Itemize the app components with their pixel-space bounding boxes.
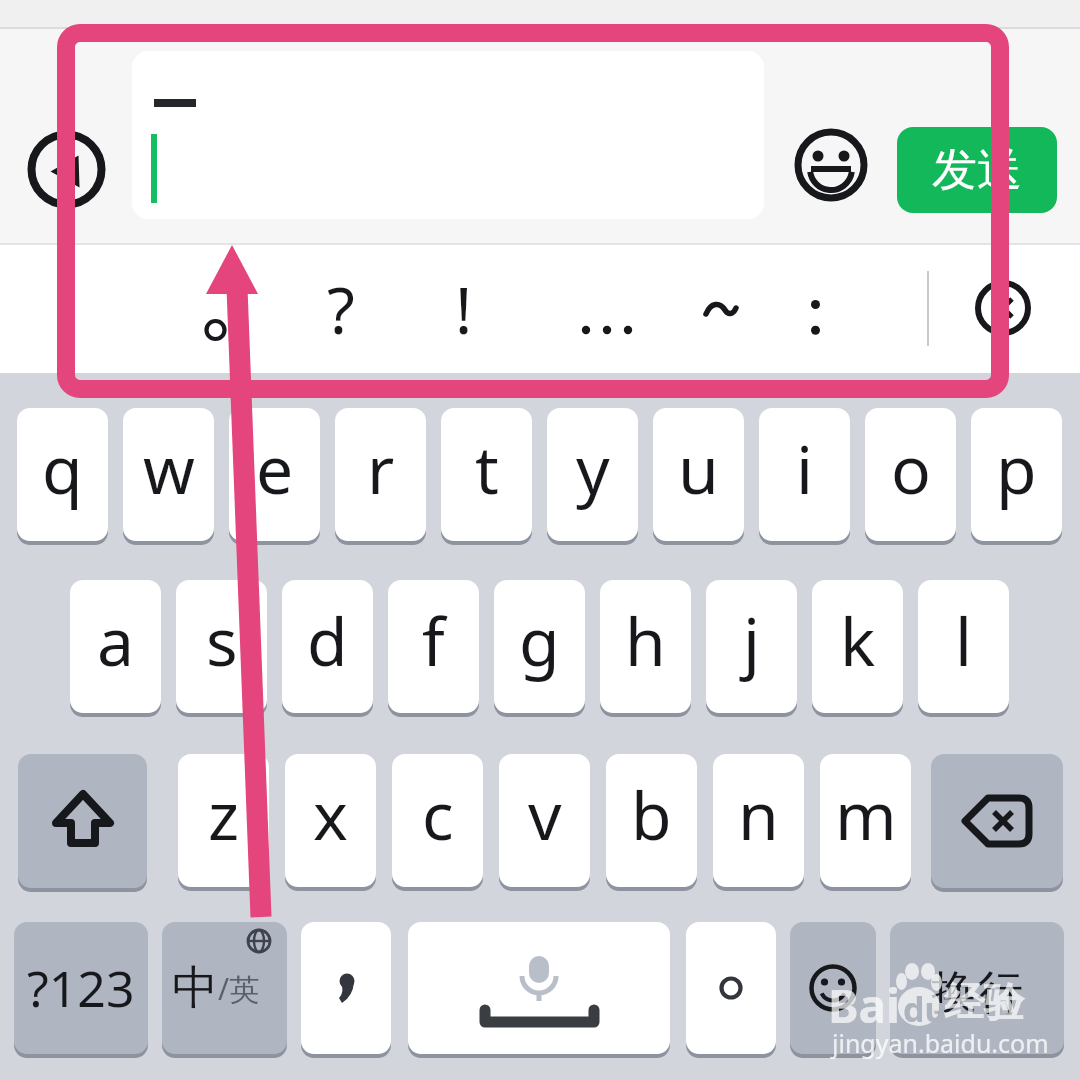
staticText: u [678, 423, 719, 513]
button[interactable]: p [971, 408, 1062, 541]
button[interactable]: 换行 [890, 922, 1064, 1054]
button[interactable]: ? [291, 245, 391, 373]
staticText: /英 [218, 968, 260, 1009]
button[interactable]: i [759, 408, 850, 541]
staticText: ? [327, 266, 355, 353]
staticText: e [256, 423, 294, 513]
staticText: 换行 [931, 964, 1023, 1022]
staticText: b [631, 769, 672, 859]
button[interactable]: z [178, 754, 269, 887]
button[interactable]: l [918, 580, 1009, 713]
button[interactable] [790, 922, 876, 1054]
button[interactable] [301, 922, 391, 1054]
button[interactable]: e [229, 408, 320, 541]
staticText: h [625, 595, 666, 685]
staticText: o [891, 423, 931, 513]
staticText: p [996, 423, 1037, 513]
staticText: x [313, 769, 348, 859]
staticText: ?123 [27, 954, 135, 1022]
staticText: y [576, 423, 610, 513]
staticText: m [835, 769, 897, 859]
button[interactable]: ! [414, 245, 514, 373]
button[interactable]: a [70, 580, 161, 713]
staticText: jingyan.baidu.com [832, 1026, 1049, 1060]
button[interactable]: g [494, 580, 585, 713]
button[interactable]: v [499, 754, 590, 887]
button[interactable]: x [285, 754, 376, 887]
staticText: k [840, 595, 876, 685]
button[interactable]: r [335, 408, 426, 541]
staticText: z [208, 769, 240, 859]
button[interactable]: 发送 [897, 127, 1057, 213]
staticText: f [422, 595, 445, 685]
staticText: 中 [172, 959, 218, 1017]
button[interactable] [771, 265, 861, 355]
staticText: s [206, 595, 238, 685]
staticText: l [955, 595, 973, 685]
button[interactable] [18, 754, 147, 888]
button[interactable] [190, 305, 240, 355]
staticText: n [738, 769, 779, 859]
button[interactable] [561, 285, 651, 375]
button[interactable] [931, 754, 1063, 888]
staticText: t [475, 423, 499, 513]
button[interactable]: y [547, 408, 638, 541]
button[interactable]: n [713, 754, 804, 887]
button[interactable]: h [600, 580, 691, 713]
staticText: a [97, 595, 135, 685]
staticText: j [743, 595, 761, 685]
button[interactable]: s [176, 580, 267, 713]
button[interactable]: t [441, 408, 532, 541]
button[interactable] [132, 51, 764, 219]
button[interactable]: o [865, 408, 956, 541]
button[interactable] [23, 126, 110, 213]
staticText: 发送 [932, 142, 1022, 199]
button[interactable] [975, 280, 1031, 336]
button[interactable] [791, 125, 871, 205]
button[interactable]: j [706, 580, 797, 713]
staticText: g [519, 595, 560, 685]
staticText: Bai [828, 974, 900, 1037]
button[interactable]: w [123, 408, 214, 541]
staticText: q [42, 423, 83, 513]
button[interactable]: m [820, 754, 911, 887]
staticText: du [903, 986, 947, 1032]
staticText: c [422, 769, 454, 859]
staticText: ! [455, 266, 473, 353]
button[interactable]: u [653, 408, 744, 541]
button[interactable] [675, 265, 765, 355]
staticText: 经验 [944, 977, 1024, 1027]
button[interactable]: d [282, 580, 373, 713]
staticText: v [528, 769, 562, 859]
button[interactable]: b [606, 754, 697, 887]
button[interactable]: k [812, 580, 903, 713]
staticText: d [307, 595, 348, 685]
staticText: r [367, 423, 395, 513]
staticText: w [143, 423, 195, 513]
button[interactable]: ?123 [14, 922, 148, 1054]
button[interactable]: c [392, 754, 483, 887]
staticText: i [796, 423, 814, 513]
button[interactable] [408, 922, 670, 1054]
button[interactable] [686, 922, 776, 1054]
button[interactable]: 中 [162, 922, 287, 1054]
button[interactable]: f [388, 580, 479, 713]
button[interactable]: q [17, 408, 108, 541]
